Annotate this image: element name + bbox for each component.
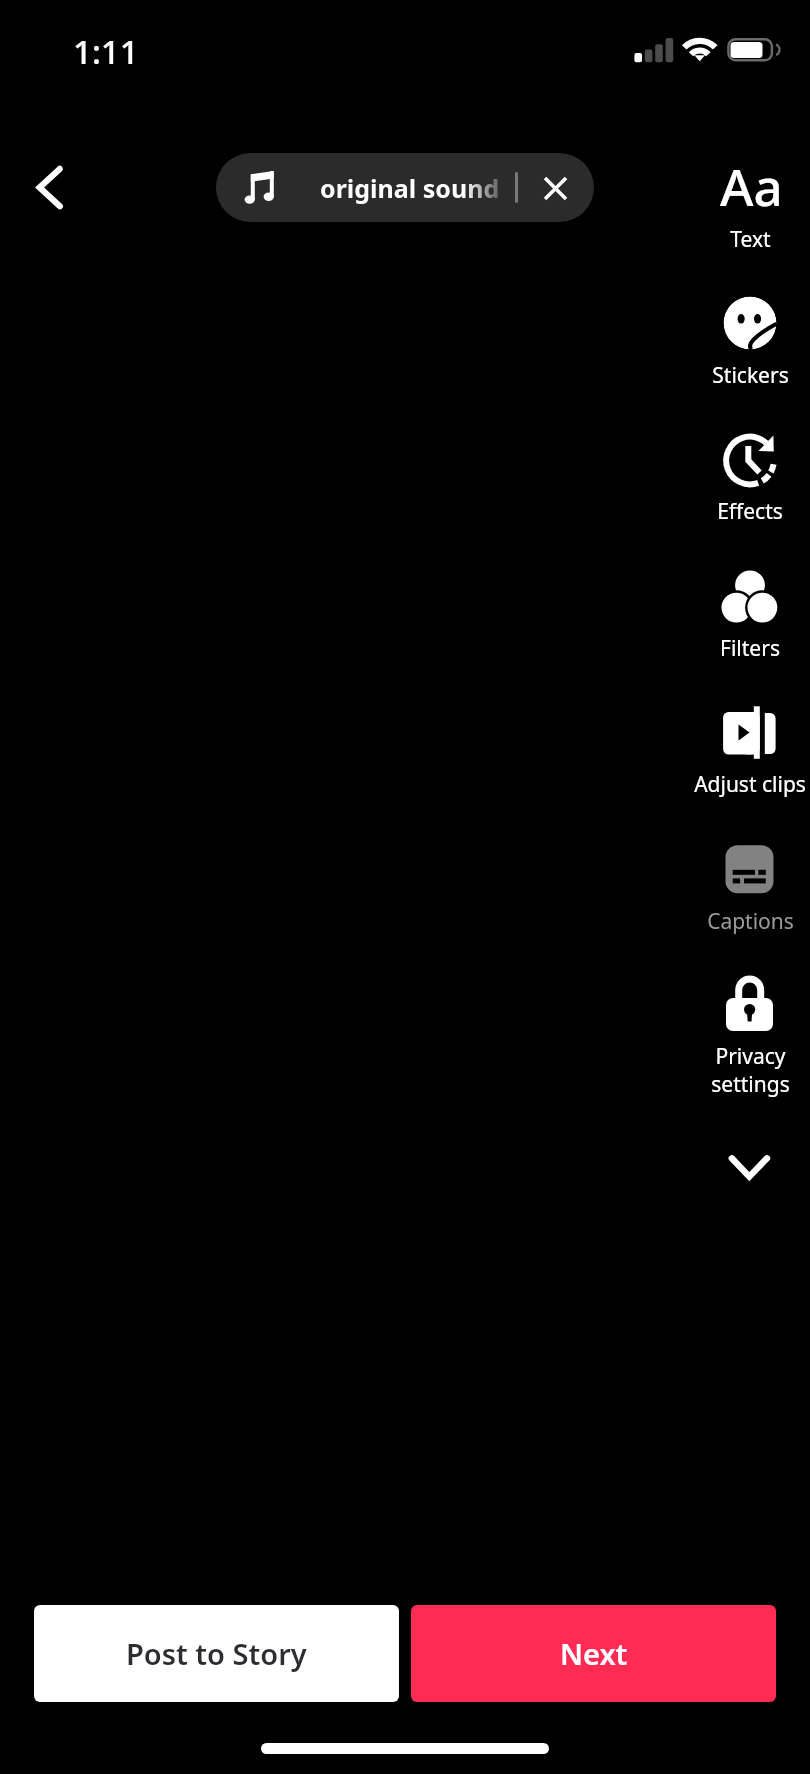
- staticText: Captions: [707, 907, 794, 936]
- staticText: Post to Story: [126, 1634, 307, 1673]
- button[interactable]: Next: [411, 1605, 776, 1702]
- staticText: Aa: [720, 151, 783, 215]
- button[interactable]: Adjust clips: [600, 700, 810, 799]
- staticText: 1:11: [73, 29, 139, 74]
- button[interactable]: Stickers: [600, 291, 810, 390]
- staticText: Stickers: [712, 361, 789, 390]
- button[interactable]: Remove sound: [533, 166, 577, 210]
- button[interactable]: Aa: [600, 155, 810, 254]
- staticText: Privacy settings: [711, 1042, 790, 1098]
- button[interactable]: Captions: [600, 837, 810, 936]
- button[interactable]: Back: [12, 150, 88, 226]
- button[interactable]: Collapse tools: [712, 1132, 788, 1204]
- staticText: original sound: [320, 171, 500, 205]
- button[interactable]: Post to Story: [34, 1605, 399, 1702]
- button[interactable]: Privacy settings: [600, 972, 810, 1098]
- staticText: Text: [730, 225, 771, 254]
- button[interactable]: original sound: [216, 153, 594, 222]
- staticText: Adjust clips: [694, 770, 806, 799]
- staticText: Effects: [717, 497, 783, 526]
- staticText: Next: [560, 1634, 628, 1673]
- button[interactable]: Filters: [600, 564, 810, 663]
- staticText: Filters: [720, 634, 780, 663]
- button[interactable]: Effects: [600, 427, 810, 526]
